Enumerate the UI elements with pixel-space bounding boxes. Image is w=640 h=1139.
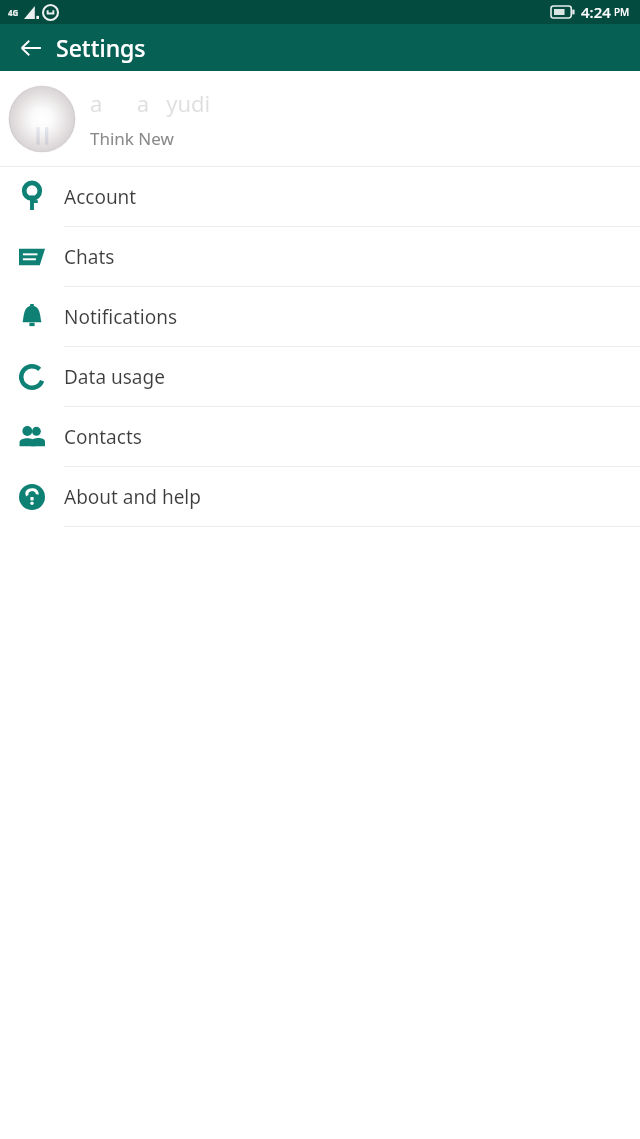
staticText: Notifications xyxy=(64,304,178,330)
staticText: PM xyxy=(614,5,630,19)
button[interactable]: Account xyxy=(0,167,640,226)
button[interactable]: a a yudi xyxy=(0,71,640,166)
button[interactable]: Chats xyxy=(0,227,640,286)
staticText: Chats xyxy=(64,244,115,270)
button[interactable]: Notifications xyxy=(0,287,640,346)
staticText: 4:24 xyxy=(581,2,611,22)
staticText: Data usage xyxy=(64,364,165,390)
staticText: Account xyxy=(64,184,137,210)
staticText: Settings xyxy=(56,32,146,63)
staticText: About and help xyxy=(64,484,201,510)
button[interactable]: Contacts xyxy=(0,407,640,466)
button[interactable]: Data usage xyxy=(0,347,640,406)
button[interactable]: About and help xyxy=(0,467,640,526)
staticText: Contacts xyxy=(64,424,142,450)
button[interactable]: Back xyxy=(9,26,53,70)
staticText: a a yudi xyxy=(90,88,211,118)
staticText: 4G xyxy=(8,7,19,18)
staticText: Think New xyxy=(90,127,174,150)
